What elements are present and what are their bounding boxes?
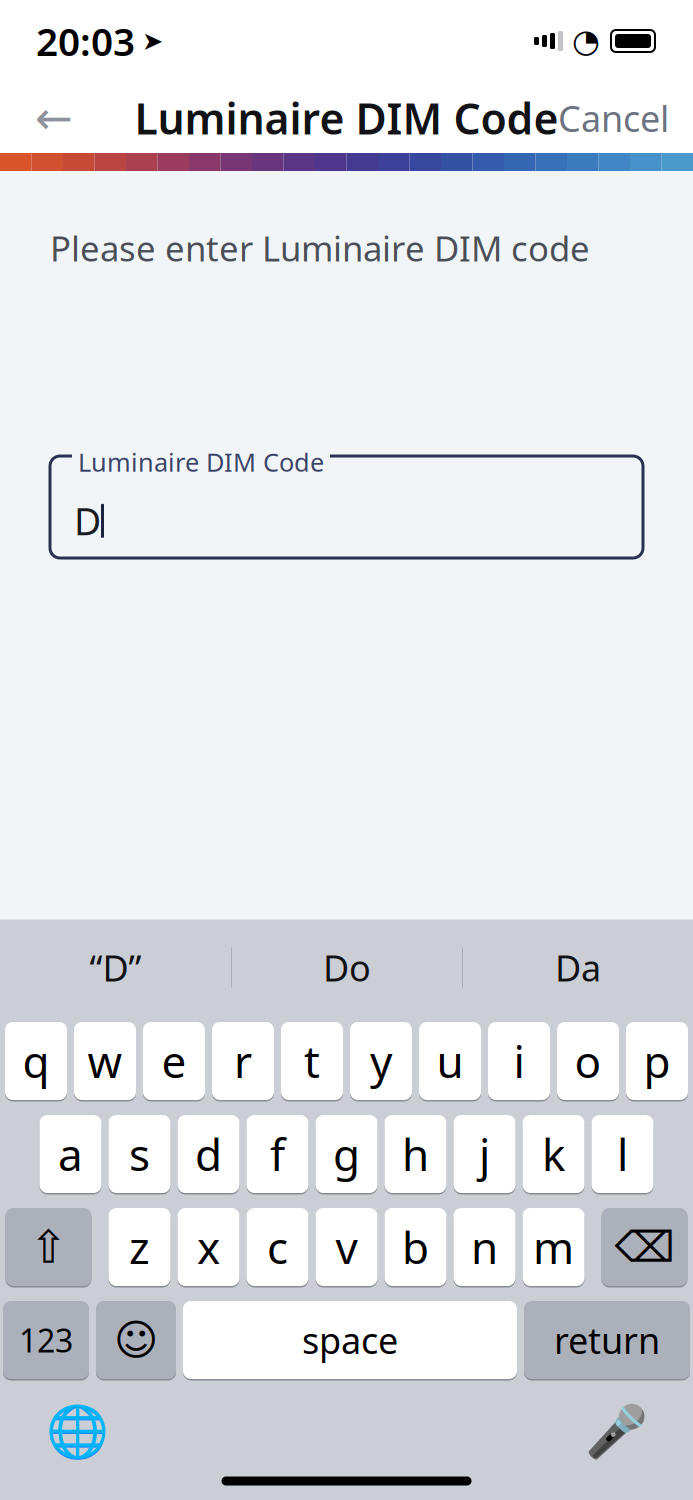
staticText: w xyxy=(87,1032,122,1090)
button[interactable]: r xyxy=(212,1020,274,1101)
button[interactable]: Shift xyxy=(5,1206,91,1287)
staticText: x xyxy=(197,1218,220,1276)
button[interactable]: Next keyboard xyxy=(40,1394,114,1468)
staticText: p xyxy=(643,1032,670,1090)
staticText: h xyxy=(402,1125,429,1183)
staticText: o xyxy=(574,1032,601,1090)
staticText: 🎤 xyxy=(584,1403,647,1460)
button[interactable]: t xyxy=(281,1020,343,1101)
staticText: q xyxy=(22,1032,49,1090)
button[interactable]: m xyxy=(522,1206,584,1287)
button[interactable]: return xyxy=(524,1299,690,1380)
staticText: Luminaire DIM Code xyxy=(134,90,558,146)
button[interactable]: l xyxy=(591,1113,653,1194)
staticText: l xyxy=(617,1125,628,1183)
button[interactable]: j xyxy=(453,1113,515,1194)
staticText: a xyxy=(58,1125,83,1183)
button[interactable]: q xyxy=(5,1020,67,1101)
staticText: ← xyxy=(35,92,73,144)
staticText: Luminaire DIM Code xyxy=(78,445,324,479)
button[interactable]: o xyxy=(557,1020,619,1101)
staticText: z xyxy=(129,1218,150,1276)
button[interactable]: space xyxy=(183,1299,517,1380)
button[interactable]: Da xyxy=(463,931,693,1003)
staticText: n xyxy=(471,1218,498,1276)
staticText: t xyxy=(304,1032,320,1090)
button[interactable]: e xyxy=(143,1020,205,1101)
staticText: i xyxy=(513,1032,524,1090)
staticText: space xyxy=(302,1316,398,1364)
staticText: y xyxy=(370,1032,392,1090)
button[interactable]: Do xyxy=(232,931,462,1003)
staticText: Da xyxy=(555,944,601,991)
staticText: D xyxy=(74,496,101,546)
button[interactable]: b xyxy=(384,1206,446,1287)
button[interactable]: 123 xyxy=(3,1299,89,1380)
staticText: ➤ xyxy=(142,27,163,55)
button[interactable]: Dictation xyxy=(579,1394,653,1468)
button[interactable]: i xyxy=(488,1020,550,1101)
staticText: 123 xyxy=(19,1319,73,1361)
staticText: ⌫ xyxy=(614,1223,674,1271)
button[interactable]: d xyxy=(177,1113,239,1194)
button[interactable]: z xyxy=(108,1206,170,1287)
staticText: ⇧ xyxy=(29,1221,67,1273)
button[interactable]: Delete xyxy=(601,1206,687,1287)
staticText: b xyxy=(402,1218,429,1276)
button[interactable]: Cancel xyxy=(558,88,669,148)
staticText: u xyxy=(436,1032,463,1090)
staticText: j xyxy=(479,1125,490,1183)
staticText: ◔ xyxy=(572,23,600,59)
staticText: 🌐 xyxy=(45,1403,108,1460)
staticText: d xyxy=(195,1125,222,1183)
button[interactable]: a xyxy=(39,1113,101,1194)
staticText: return xyxy=(554,1316,660,1364)
button[interactable]: y xyxy=(350,1020,412,1101)
button[interactable]: u xyxy=(419,1020,481,1101)
staticText: f xyxy=(270,1125,285,1183)
staticText: e xyxy=(161,1032,186,1090)
button[interactable]: p xyxy=(626,1020,688,1101)
button[interactable]: Emoji xyxy=(96,1299,176,1380)
staticText: m xyxy=(533,1218,574,1276)
button[interactable]: n xyxy=(453,1206,515,1287)
button[interactable]: v xyxy=(315,1206,377,1287)
staticText: c xyxy=(267,1218,288,1276)
button[interactable]: g xyxy=(315,1113,377,1194)
button[interactable]: k xyxy=(522,1113,584,1194)
staticText: Do xyxy=(323,944,371,991)
staticText: k xyxy=(542,1125,565,1183)
staticText: ☺ xyxy=(114,1316,158,1364)
staticText: “D” xyxy=(89,944,141,991)
button[interactable]: c xyxy=(246,1206,308,1287)
button[interactable]: “D” xyxy=(0,931,231,1003)
staticText: 20:03 xyxy=(36,15,135,67)
staticText: g xyxy=(333,1125,360,1183)
staticText: Please enter Luminaire DIM code xyxy=(50,225,590,271)
staticText: v xyxy=(335,1218,357,1276)
staticText: r xyxy=(234,1032,252,1090)
button[interactable]: h xyxy=(384,1113,446,1194)
button[interactable]: s xyxy=(108,1113,170,1194)
button[interactable]: f xyxy=(246,1113,308,1194)
staticText: s xyxy=(129,1125,150,1183)
button[interactable]: x xyxy=(177,1206,239,1287)
staticText: Cancel xyxy=(558,94,669,142)
button[interactable]: w xyxy=(74,1020,136,1101)
button[interactable]: Back xyxy=(24,88,84,148)
